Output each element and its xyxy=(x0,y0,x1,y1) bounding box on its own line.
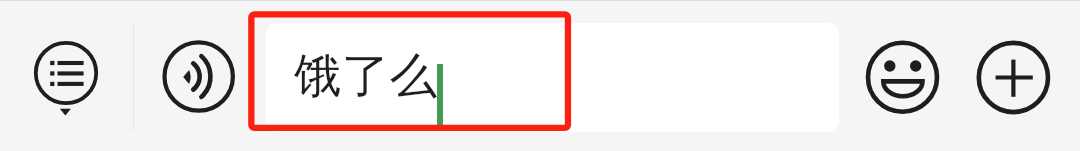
button[interactable]: 饿了么 xyxy=(266,23,839,132)
staticText: 饿了么 xyxy=(294,46,438,106)
button[interactable]: More functions xyxy=(976,40,1052,116)
button[interactable]: Emoji xyxy=(865,40,941,116)
button[interactable]: Voice input xyxy=(162,39,237,114)
button[interactable]: Menu xyxy=(26,30,106,122)
